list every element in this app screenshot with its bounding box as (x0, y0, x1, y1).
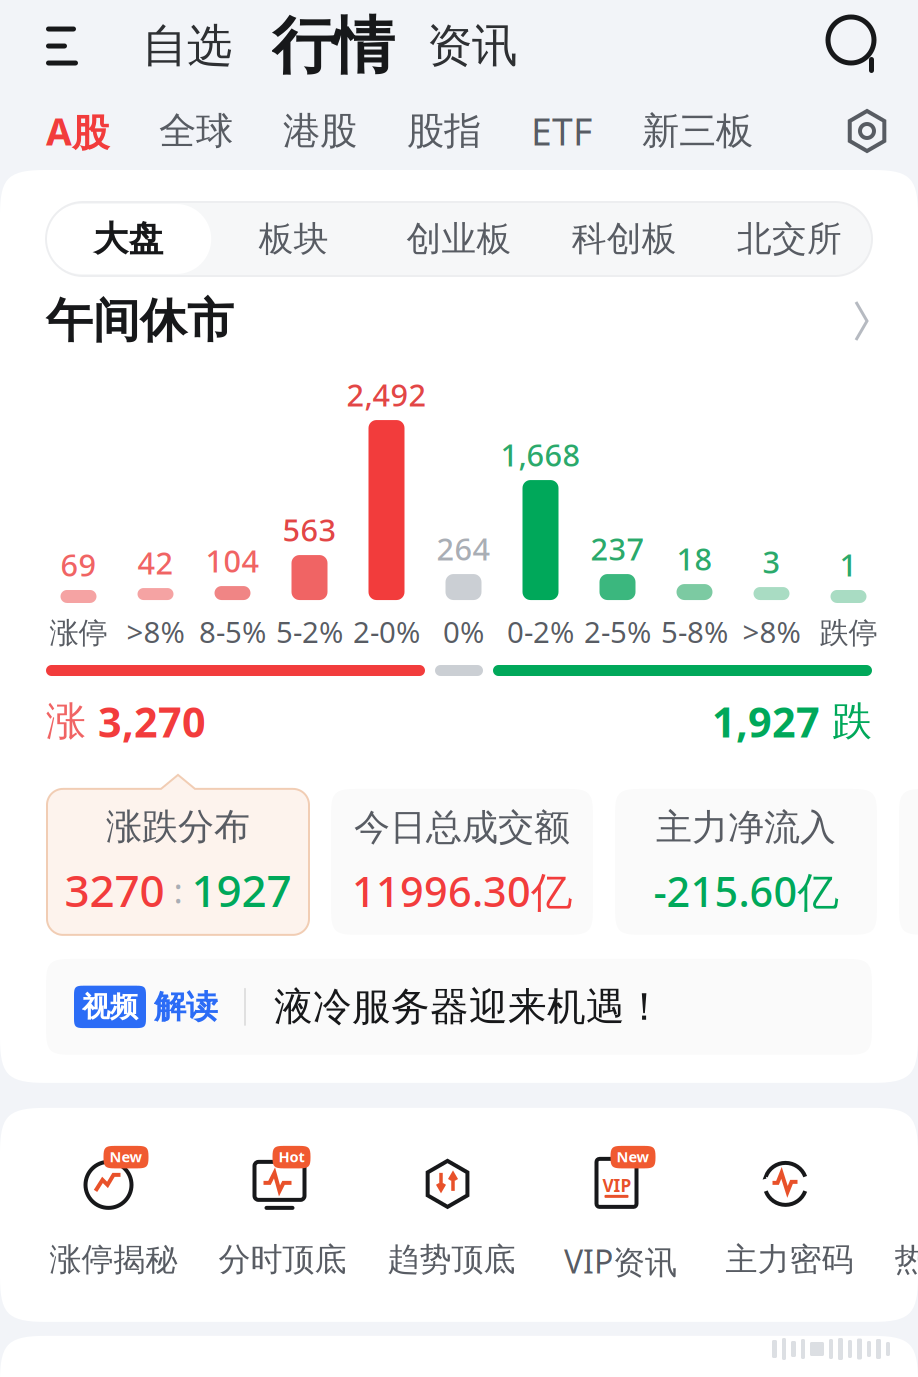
button[interactable]: A股 (46, 106, 109, 156)
staticText: 5-8% (661, 612, 728, 651)
button[interactable]: 自选 (142, 18, 232, 74)
button[interactable]: Menu (46, 14, 80, 78)
staticText: 0-2% (507, 612, 574, 651)
staticText: 563 (282, 509, 336, 550)
staticText: 视频 (82, 990, 138, 1024)
staticText: 北交所 (737, 218, 842, 260)
staticText: New (616, 1147, 649, 1166)
staticText: 264 (436, 528, 490, 569)
staticText: 自选 (142, 18, 232, 74)
staticText: 资讯 (427, 18, 517, 74)
staticText: 液冷服务器迎来机遇！ (274, 983, 664, 1031)
staticText: >8% (126, 612, 184, 651)
button[interactable]: Settings (842, 106, 892, 156)
staticText: Hot (278, 1147, 304, 1166)
staticText: 3 (762, 541, 780, 582)
staticText: 涨 (46, 697, 98, 746)
staticText: 股指 (407, 108, 481, 154)
staticText: 3,270 (98, 694, 206, 749)
staticText: 午间休市 (46, 292, 234, 350)
button[interactable]: 科创板 (542, 204, 707, 274)
staticText: 8-5% (199, 612, 266, 651)
staticText: 主力密码 (725, 1240, 853, 1279)
staticText: >8% (742, 612, 800, 651)
button[interactable]: 热门解读 (874, 1108, 918, 1322)
staticText: 趋势顶底 (387, 1240, 515, 1279)
staticText: 42 (137, 542, 173, 583)
button[interactable]: ETF (531, 106, 592, 156)
button[interactable]: 今日总成交额 (331, 775, 593, 935)
staticText: 1,927 (712, 694, 820, 749)
staticText: VIP (602, 1174, 631, 1197)
staticText: 2,492 (346, 374, 426, 415)
button[interactable]: Hot (198, 1108, 367, 1322)
button[interactable]: 涨跌分布 (47, 775, 309, 935)
button[interactable]: 港股 (283, 108, 357, 154)
button[interactable]: 大盘 (46, 204, 211, 274)
staticText: 5-2% (276, 612, 343, 651)
staticText: 热门解读 (894, 1240, 918, 1279)
staticText: 69 (60, 544, 96, 585)
staticText: ETF (531, 106, 592, 156)
staticText: 全球 (159, 108, 233, 154)
staticText: 104 (205, 540, 259, 581)
button[interactable]: 新三板 (642, 108, 753, 154)
staticText: -215.60亿 (653, 864, 838, 918)
staticText: 港股 (283, 108, 357, 154)
staticText: 237 (590, 528, 644, 569)
button[interactable]: 视频 (0, 959, 918, 1055)
staticText: 1927 (191, 861, 291, 919)
button[interactable]: 资讯 (427, 18, 517, 74)
staticText: 18 (676, 538, 712, 579)
staticText: New (109, 1147, 142, 1166)
staticText: A股 (46, 106, 109, 156)
staticText: 跌停 (819, 615, 877, 651)
button[interactable]: 主力密码 (705, 1108, 874, 1322)
staticText: 大盘 (94, 218, 164, 260)
staticText: 新三板 (642, 108, 753, 154)
button[interactable]: VIP (536, 1108, 705, 1322)
staticText: 涨停揭秘 (49, 1240, 177, 1279)
staticText: 分时顶底 (218, 1240, 346, 1279)
staticText: 11996.30亿 (352, 864, 572, 918)
button[interactable]: 主力净流入 (615, 775, 877, 935)
button[interactable]: New (29, 1108, 198, 1322)
staticText: 3270 (64, 861, 164, 919)
staticText: 板块 (259, 218, 329, 260)
button[interactable]: 行情 (272, 8, 394, 84)
button[interactable]: 创业板 (376, 204, 542, 274)
staticText: : (164, 867, 191, 913)
staticText: 行情 (272, 8, 394, 84)
staticText: 创业板 (406, 218, 511, 260)
staticText: 1,668 (500, 434, 580, 475)
staticText: 科创板 (572, 218, 677, 260)
button[interactable]: 全球 (159, 108, 233, 154)
staticText: 2-0% (353, 612, 420, 651)
staticText: 跌 (820, 697, 872, 746)
button[interactable]: Search (826, 15, 888, 77)
button[interactable]: 板块 (211, 204, 376, 274)
button[interactable]: 股指 (407, 108, 481, 154)
staticText: 涨停 (49, 615, 107, 651)
button[interactable]: 午间休市 (0, 276, 918, 366)
staticText: 解读 (154, 987, 218, 1026)
staticText: 0% (443, 612, 484, 651)
staticText: 主力净流入 (656, 805, 836, 849)
staticText: 今日总成交额 (354, 805, 570, 849)
button[interactable]: 趋势顶底 (367, 1108, 536, 1322)
staticText: VIP资讯 (564, 1240, 677, 1283)
staticText: 2-5% (584, 612, 651, 651)
staticText: 1 (839, 544, 857, 585)
staticText: 涨跌分布 (106, 805, 250, 849)
button[interactable]: 北交所 (707, 204, 872, 274)
